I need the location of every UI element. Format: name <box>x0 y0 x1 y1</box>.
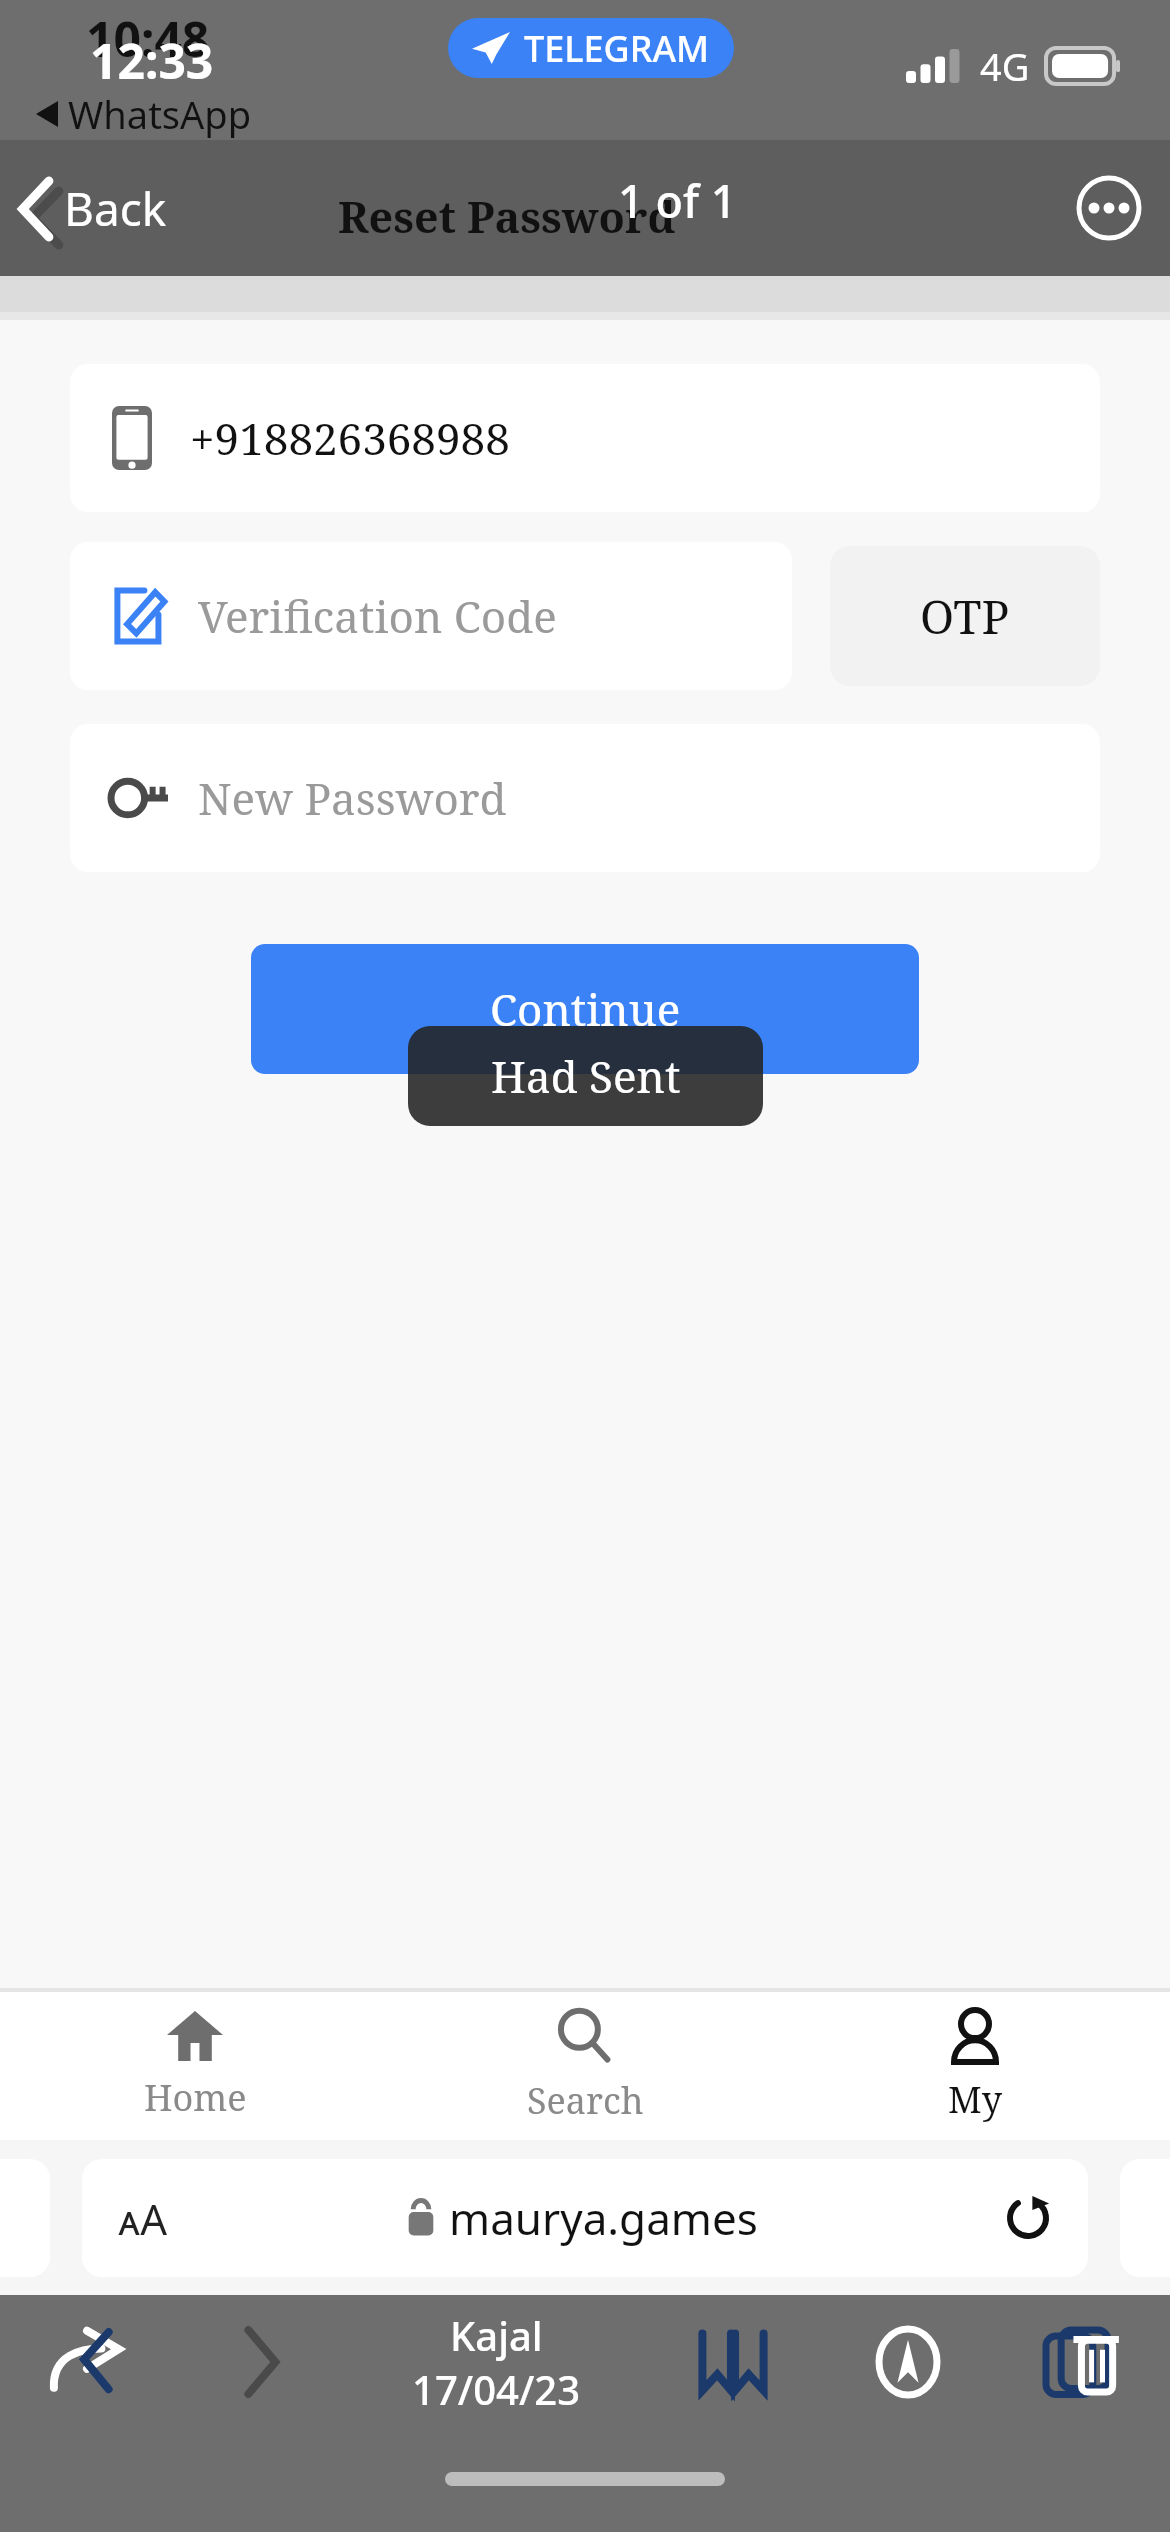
button[interactable]: Home <box>0 1992 390 2140</box>
staticText: 10:48 <box>86 6 210 71</box>
staticText: New Password <box>198 768 507 828</box>
staticText: 12:33 <box>90 28 214 93</box>
button[interactable]: Reload <box>998 2188 1058 2248</box>
button[interactable]: Search <box>390 1992 780 2140</box>
button[interactable]: Compass <box>820 2295 995 2429</box>
button[interactable]: Continue <box>251 944 919 1074</box>
button[interactable]: Back <box>0 2295 174 2429</box>
button[interactable]: Tabs <box>995 2295 1170 2429</box>
staticText: TELEGRAM <box>524 24 710 73</box>
staticText: Home <box>144 2073 247 2122</box>
staticText: 17/04/23 <box>412 2362 581 2416</box>
staticText: Back <box>64 177 167 240</box>
staticText: OTP <box>920 585 1010 648</box>
staticText: ᴀA <box>118 2190 167 2247</box>
staticText: My <box>948 2075 1003 2124</box>
button[interactable]: TELEGRAM <box>448 18 734 78</box>
staticText: 1 of 1 <box>618 170 737 231</box>
button[interactable]: Back <box>14 177 173 240</box>
button[interactable]: Verification Code <box>70 542 792 690</box>
button[interactable]: Forward <box>174 2295 348 2429</box>
staticText: Reset Password <box>338 187 676 246</box>
staticText: maurya.games <box>449 2188 758 2248</box>
button[interactable]: ᴀA <box>82 2159 1088 2277</box>
staticText: Continue <box>490 979 681 1039</box>
staticText: Kajal <box>450 2308 543 2362</box>
button[interactable]: New Password <box>70 724 1100 872</box>
button[interactable]: Bookmarks <box>645 2295 820 2429</box>
staticText: Had Sent <box>491 1046 681 1106</box>
staticText: WhatsApp <box>68 88 252 140</box>
staticText: +918826368988 <box>190 408 510 468</box>
staticText: 4G <box>980 40 1030 92</box>
button[interactable]: +918826368988 <box>70 364 1100 512</box>
staticText: Search <box>527 2076 644 2125</box>
staticText: Verification Code <box>198 586 557 646</box>
button[interactable]: OTP <box>830 546 1100 686</box>
button[interactable]: More <box>1076 175 1142 241</box>
button[interactable]: My <box>780 1992 1170 2140</box>
